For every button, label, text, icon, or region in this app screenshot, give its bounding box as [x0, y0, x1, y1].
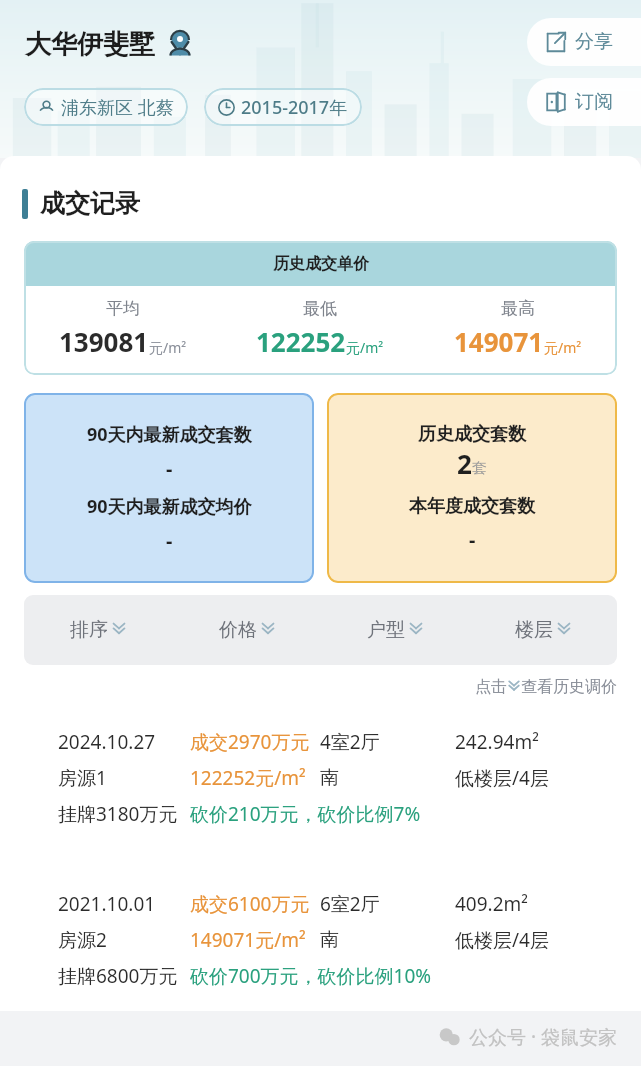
staticText: -: [469, 526, 476, 553]
staticText: 公众号 · 袋鼠安家: [469, 1024, 617, 1050]
staticText: 浦东新区 北蔡: [61, 95, 174, 120]
staticText: 查看历史调价: [521, 677, 617, 697]
staticText: 2024.10.27: [58, 729, 190, 755]
staticText: 409.2m²: [455, 891, 528, 917]
button[interactable]: 历史成交单价: [24, 241, 617, 375]
staticText: 房源2: [58, 927, 190, 953]
staticText: 元/m²: [346, 338, 384, 357]
staticText: 139081: [59, 324, 149, 359]
staticText: 分享: [575, 30, 613, 54]
staticText: 最低: [303, 298, 337, 319]
staticText: 149071元/m²: [190, 927, 320, 953]
button[interactable]: 浦东新区 北蔡: [24, 88, 188, 126]
staticText: 6室2厅: [320, 891, 455, 917]
staticText: 户型: [367, 618, 405, 642]
staticText: 订阅: [575, 90, 613, 114]
staticText: 南: [320, 928, 455, 952]
button[interactable]: 排序: [24, 595, 173, 665]
staticText: 大华伊斐墅: [25, 28, 155, 61]
button[interactable]: 位置: [165, 30, 195, 60]
staticText: 成交记录: [40, 188, 140, 219]
staticText: 砍价210万元，砍价比例7%: [190, 801, 421, 827]
staticText: 楼层: [515, 618, 553, 642]
staticText: 4室2厅: [320, 729, 455, 755]
staticText: 本年度成交套数: [409, 495, 535, 518]
staticText: 122252: [256, 324, 346, 359]
staticText: 低楼层/4层: [455, 927, 549, 953]
button[interactable]: 历史成交套数: [327, 393, 617, 583]
staticText: 成交6100万元: [190, 891, 320, 917]
button[interactable]: 2021.10.01: [24, 869, 617, 1011]
button[interactable]: 2015-2017年: [204, 88, 362, 126]
button[interactable]: 分享: [527, 18, 641, 66]
button[interactable]: 价格: [173, 595, 321, 665]
staticText: 历史成交套数: [418, 423, 526, 446]
staticText: 242.94m²: [455, 729, 539, 755]
staticText: 挂牌6800万元: [58, 963, 190, 989]
staticText: 排序: [70, 618, 108, 642]
button[interactable]: 楼层: [469, 595, 617, 665]
staticText: 历史成交单价: [273, 254, 369, 274]
staticText: 90天内最新成交均价: [87, 494, 252, 519]
staticText: 2021.10.01: [58, 891, 190, 917]
button[interactable]: 2024.10.27: [24, 707, 617, 849]
staticText: -: [166, 527, 173, 554]
staticText: 90天内最新成交套数: [87, 422, 252, 447]
staticText: 平均: [106, 298, 140, 319]
staticText: 149071: [454, 324, 544, 359]
staticText: 挂牌3180万元: [58, 801, 190, 827]
staticText: 元/m²: [149, 338, 187, 357]
staticText: 砍价700万元，砍价比例10%: [190, 963, 432, 989]
button[interactable]: 订阅: [527, 78, 641, 126]
staticText: 成交2970万元: [190, 729, 320, 755]
button[interactable]: 点击: [475, 677, 617, 697]
staticText: 低楼层/4层: [455, 765, 549, 791]
staticText: 最高: [501, 298, 535, 319]
staticText: 元/m²: [544, 338, 582, 357]
staticText: 2015-2017年: [241, 95, 348, 120]
staticText: 点击: [475, 677, 507, 697]
staticText: 2: [457, 446, 472, 481]
staticText: 价格: [219, 618, 257, 642]
staticText: 122252元/m²: [190, 765, 320, 791]
button[interactable]: 90天内最新成交套数: [24, 393, 314, 583]
staticText: 南: [320, 766, 455, 790]
button[interactable]: 户型: [321, 595, 469, 665]
staticText: 房源1: [58, 765, 190, 791]
staticText: 套: [472, 459, 487, 478]
staticText: -: [166, 455, 173, 482]
